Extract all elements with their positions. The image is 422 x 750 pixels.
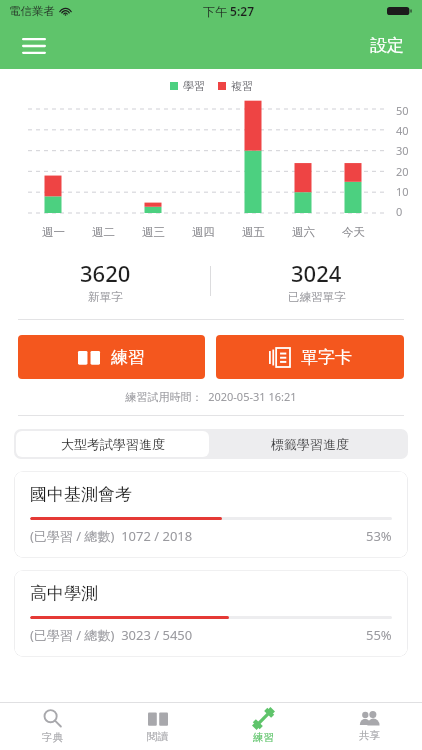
button[interactable]: 大型考試學習進度 <box>16 431 209 457</box>
staticText: 國中基測會考 <box>30 484 132 505</box>
button[interactable]: 練習 <box>210 703 316 750</box>
staticText: 3024 <box>291 258 342 288</box>
staticText: 大型考試學習進度 <box>61 436 165 452</box>
staticText: 55% <box>366 626 392 644</box>
button[interactable]: 標籤學習進度 <box>211 429 408 459</box>
staticText: 20 <box>396 164 409 179</box>
staticText: 下午 5:27 <box>203 3 255 19</box>
staticText: 今天 <box>342 225 365 239</box>
staticText: 設定 <box>370 35 404 56</box>
staticText: 週二 <box>92 225 115 239</box>
staticText: 已練習單字 <box>288 290 346 304</box>
staticText: 53% <box>366 527 392 545</box>
staticText: 單字卡 <box>301 347 352 368</box>
staticText: 50 <box>396 103 409 118</box>
staticText: 週五 <box>242 225 265 239</box>
staticText: 練習 <box>111 347 145 368</box>
staticText: 練習試用時間： 2020-05-31 16:21 <box>0 389 422 404</box>
staticText: (已學習 / 總數) 1072 / 2018 <box>30 527 193 545</box>
staticText: 10 <box>396 184 409 199</box>
staticText: 週一 <box>42 225 65 239</box>
staticText: 0 <box>396 204 403 219</box>
staticText: 新單字 <box>88 290 123 304</box>
staticText: 週四 <box>192 225 215 239</box>
button[interactable]: 練習 <box>18 335 205 379</box>
staticText: 電信業者 <box>9 4 55 18</box>
staticText: 高中學測 <box>30 583 98 604</box>
button[interactable]: 字典 <box>0 703 105 750</box>
staticText: 字典 <box>42 731 63 744</box>
staticText: 學習 <box>183 79 205 93</box>
staticText: 週六 <box>292 225 315 239</box>
staticText: (已學習 / 總數) 3023 / 5450 <box>30 626 193 644</box>
staticText: 標籤學習進度 <box>271 436 349 452</box>
button[interactable]: 國中基測會考 <box>14 471 408 558</box>
staticText: 共享 <box>359 729 380 742</box>
staticText: 40 <box>396 123 409 138</box>
button[interactable]: 閱讀 <box>105 703 210 750</box>
button[interactable]: 高中學測 <box>14 570 408 657</box>
staticText: 練習 <box>253 731 274 744</box>
staticText: 週三 <box>142 225 165 239</box>
staticText: 30 <box>396 143 409 158</box>
button[interactable]: 設定 <box>360 29 414 62</box>
staticText: 閱讀 <box>147 730 168 743</box>
staticText: 複習 <box>231 79 253 93</box>
button[interactable]: Menu <box>12 24 56 68</box>
button[interactable]: 單字卡 <box>216 335 404 379</box>
button[interactable]: 共享 <box>316 703 422 750</box>
staticText: 3620 <box>80 258 131 288</box>
